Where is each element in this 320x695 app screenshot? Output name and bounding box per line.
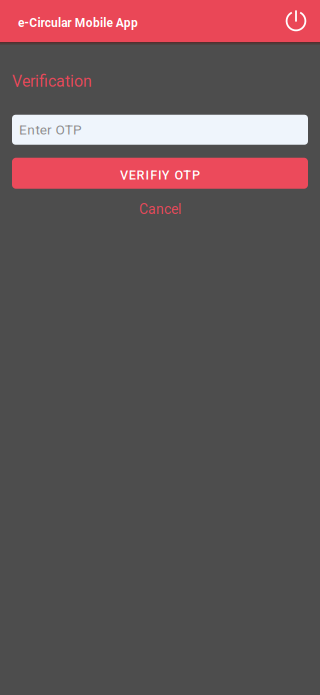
staticText: Cancel	[139, 201, 181, 217]
button[interactable]: Log out	[279, 4, 313, 38]
staticText: Enter OTP	[19, 122, 82, 138]
staticText: e-Circular Mobile App	[18, 16, 138, 30]
staticText: VERIFIY OTP	[120, 168, 200, 183]
button[interactable]: Cancel	[0, 201, 320, 218]
button[interactable]: Enter OTP	[12, 115, 308, 145]
button[interactable]: VERIFIY OTP	[12, 158, 308, 189]
staticText: Verification	[12, 72, 92, 91]
